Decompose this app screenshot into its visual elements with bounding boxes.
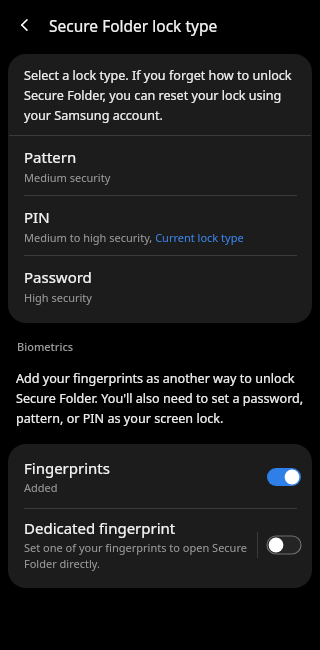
button[interactable]: Fingerprints xyxy=(8,450,312,503)
staticText: Added xyxy=(24,480,58,495)
staticText: Dedicated fingerprint xyxy=(24,518,176,538)
button[interactable]: Password xyxy=(8,256,312,315)
staticText: Add your fingerprints as another way to … xyxy=(16,370,306,427)
staticText: Password xyxy=(24,267,92,287)
button[interactable]: PIN xyxy=(8,196,312,255)
staticText: Fingerprints xyxy=(24,458,110,478)
button[interactable]: Pattern xyxy=(8,136,312,195)
staticText: Biometrics xyxy=(17,339,74,354)
button[interactable]: Toggle on xyxy=(266,467,302,487)
staticText: High security xyxy=(24,290,92,305)
staticText: Secure Folder lock type xyxy=(49,15,218,36)
button[interactable]: Toggle off xyxy=(266,535,302,555)
button[interactable]: Back xyxy=(11,11,39,39)
staticText: Medium security xyxy=(24,170,111,185)
staticText: Medium to high security, Current lock ty… xyxy=(24,230,244,245)
staticText: Select a lock type. If you forget how to… xyxy=(24,67,298,124)
staticText: Set one of your fingerprints to open Sec… xyxy=(24,540,249,571)
staticText: PIN xyxy=(24,207,50,227)
button[interactable]: Dedicated fingerprint xyxy=(8,509,312,580)
staticText: Pattern xyxy=(24,147,77,167)
